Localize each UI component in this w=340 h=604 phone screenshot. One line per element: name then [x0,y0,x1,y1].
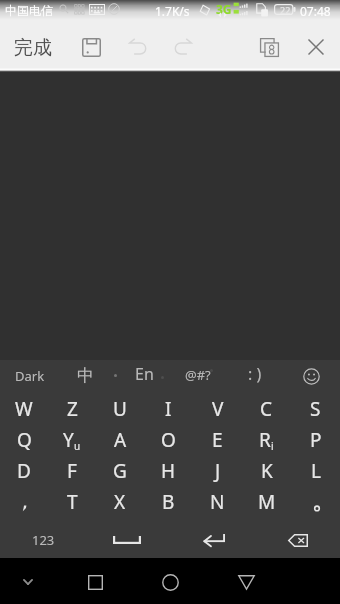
button[interactable]: P [291,426,340,454]
button[interactable]: W [0,395,48,423]
staticText: 1.7K/s [155,3,190,19]
staticText: S [310,396,321,422]
button[interactable]: Save [73,30,109,64]
button[interactable] [0,488,48,516]
button[interactable]: E [193,426,242,454]
button[interactable]: Undo [120,30,156,64]
button[interactable]: H [144,457,193,485]
button[interactable]: Q [0,426,48,454]
button[interactable]: Back [229,565,263,599]
staticText: 完成 [14,36,52,60]
staticText: V [212,396,224,422]
staticText: Q [17,427,32,453]
staticText: 07:48 [300,3,331,19]
button[interactable]: V [193,395,242,423]
staticText: O [161,427,176,453]
button[interactable]: A [96,426,144,454]
button[interactable]: S [291,395,340,423]
staticText: J [215,458,221,484]
staticText: 22 [280,4,291,15]
staticText: 中国电信 [5,3,53,18]
staticText: En [135,363,154,385]
staticText: Y [63,427,74,453]
staticText: G [113,458,127,484]
staticText: X [114,489,126,515]
staticText: u [74,439,81,453]
staticText: Dark [15,367,45,385]
staticText: P [310,427,322,453]
button[interactable]: Tabs [251,30,287,64]
button[interactable]: : ) [233,361,277,387]
staticText: M [258,489,276,515]
staticText: : ) [248,363,262,385]
button[interactable]: Emoji [295,360,328,393]
staticText: 3G [216,1,232,17]
button[interactable]: O [144,426,193,454]
button[interactable]: 完成 [6,31,60,65]
staticText: C [260,396,273,422]
button[interactable]: Y [48,426,96,454]
button[interactable]: J [193,457,242,485]
staticText: N [210,489,225,515]
staticText: K [261,458,273,484]
button[interactable]: Home [153,565,187,599]
button[interactable]: Close [298,30,334,64]
button[interactable]: 中 [63,362,107,388]
staticText: W [15,396,33,422]
staticText: A [114,427,127,453]
button[interactable]: @#? [176,363,220,386]
staticText: E [212,427,223,453]
button[interactable]: T [48,488,96,516]
staticText: 中 [77,365,94,386]
button[interactable]: K [242,457,291,485]
button[interactable]: R [242,426,291,454]
button[interactable]: Hide keyboard [12,566,44,598]
button[interactable]: M [242,488,291,516]
button[interactable]: L [291,457,340,485]
button[interactable]: Z [48,395,96,423]
staticText: Z [67,396,78,422]
button[interactable]: N [193,488,242,516]
button[interactable]: Space [98,524,156,556]
staticText: 123 [32,531,55,549]
staticText: U [113,396,127,422]
staticText: B [162,489,175,515]
staticText: T [67,489,78,515]
staticText: R [259,427,271,453]
button[interactable]: G [96,457,144,485]
staticText: H [161,458,176,484]
staticText: L [311,458,321,484]
button[interactable]: Redo [165,30,201,64]
button[interactable]: D [0,457,48,485]
button[interactable]: X [96,488,144,516]
button[interactable]: I [144,395,193,423]
button[interactable]: Recents [78,565,112,599]
staticText: F [67,458,77,484]
button[interactable] [291,488,340,516]
button[interactable]: B [144,488,193,516]
button[interactable]: C [242,395,291,423]
button[interactable]: Backspace [274,524,322,556]
button[interactable]: U [96,395,144,423]
button[interactable]: En [122,362,166,386]
button[interactable]: F [48,457,96,485]
button[interactable]: 123 [20,524,66,556]
button[interactable]: Dark [4,365,56,387]
staticText: @#? [185,366,211,384]
staticText: D [17,458,31,484]
button[interactable]: Enter [190,524,238,556]
staticText: i [271,439,274,453]
staticText: I [165,396,172,422]
